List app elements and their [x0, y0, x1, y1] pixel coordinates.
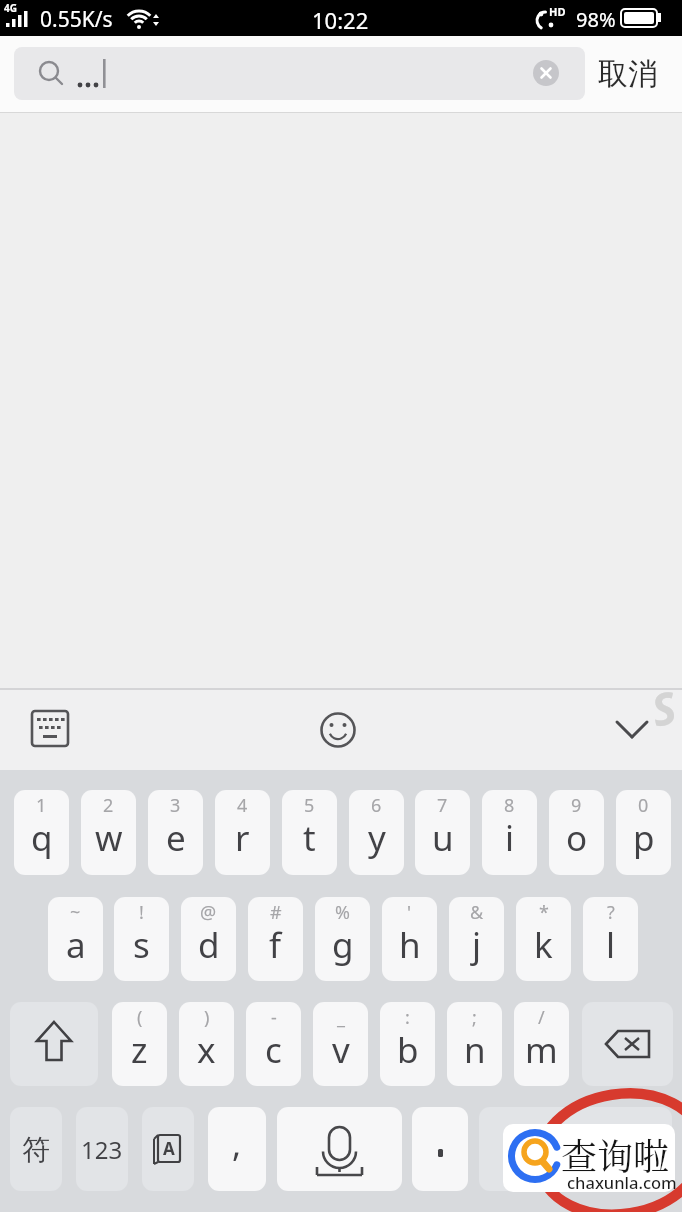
staticText: , — [232, 1121, 242, 1167]
staticText: @ — [200, 900, 217, 925]
staticText: s — [133, 921, 150, 969]
staticText: : — [405, 1005, 410, 1030]
staticText: 0 — [638, 793, 649, 818]
button[interactable] — [14, 47, 585, 100]
staticText: 搜索 — [546, 1130, 606, 1168]
button[interactable] — [304, 696, 372, 764]
button[interactable]: ( — [112, 1002, 167, 1086]
staticText: 2 — [103, 793, 114, 818]
staticText: t — [303, 814, 316, 862]
staticText: 4 — [237, 793, 248, 818]
staticText: % — [335, 900, 350, 925]
button[interactable]: / — [514, 1002, 569, 1086]
button[interactable]: ) — [179, 1002, 234, 1086]
staticText: 0.55K/s — [40, 5, 113, 34]
button[interactable]: A — [142, 1107, 194, 1191]
staticText: r — [235, 814, 250, 862]
button[interactable]: 6 — [349, 790, 404, 875]
staticText: 5 — [304, 793, 315, 818]
staticText: # — [270, 900, 282, 925]
staticText: 8 — [504, 793, 515, 818]
staticText: q — [31, 814, 53, 862]
button[interactable]: 符 — [10, 1107, 62, 1191]
staticText: 取消 — [598, 55, 658, 93]
button[interactable]: # — [248, 897, 303, 981]
button[interactable] — [277, 1107, 402, 1191]
staticText: 查询啦 — [561, 1129, 670, 1181]
staticText: m — [525, 1026, 558, 1074]
button[interactable]: 3 — [148, 790, 203, 875]
staticText: e — [166, 814, 186, 862]
staticText: 符 — [22, 1132, 50, 1167]
button[interactable]: 7 — [415, 790, 470, 875]
button[interactable] — [10, 1002, 98, 1086]
button[interactable]: @ — [181, 897, 236, 981]
staticText: * — [539, 900, 549, 925]
button[interactable]: - — [246, 1002, 301, 1086]
staticText: 98% — [576, 6, 616, 33]
staticText: k — [534, 921, 553, 969]
staticText: i — [505, 814, 515, 862]
button[interactable] — [582, 1002, 673, 1086]
button[interactable] — [16, 696, 84, 764]
button[interactable]: 1 — [14, 790, 69, 875]
staticText: p — [633, 814, 655, 862]
button[interactable]: 9 — [549, 790, 604, 875]
staticText: 7 — [437, 793, 448, 818]
staticText: n — [464, 1026, 486, 1074]
staticText: / — [538, 1005, 545, 1030]
staticText: f — [269, 921, 282, 969]
button[interactable]: 4 — [215, 790, 270, 875]
button[interactable]: , — [208, 1107, 266, 1191]
staticText: a — [66, 921, 86, 969]
button[interactable] — [598, 696, 666, 764]
button[interactable]: ~ — [48, 897, 103, 981]
button[interactable]: 搜索 — [479, 1107, 672, 1191]
button[interactable]: * — [516, 897, 571, 981]
staticText: z — [131, 1026, 148, 1074]
button[interactable]: 123 — [76, 1107, 128, 1191]
button[interactable]: 5 — [282, 790, 337, 875]
staticText: 4G — [4, 1, 17, 15]
staticText: S — [646, 676, 682, 740]
staticText: 9 — [571, 793, 582, 818]
staticText: 3 — [170, 793, 181, 818]
button[interactable]: 2 — [81, 790, 136, 875]
staticText: 10:22 — [312, 5, 369, 35]
staticText: x — [197, 1026, 216, 1074]
staticText: v — [332, 1026, 350, 1074]
staticText: h — [399, 921, 421, 969]
button[interactable]: ; — [447, 1002, 502, 1086]
button[interactable]: % — [315, 897, 370, 981]
staticText: w — [95, 814, 123, 862]
staticText: ) — [204, 1005, 210, 1030]
staticText: l — [606, 921, 616, 969]
staticText: u — [432, 814, 454, 862]
button[interactable]: : — [380, 1002, 435, 1086]
staticText: d — [198, 921, 220, 969]
staticText: o — [566, 814, 588, 862]
staticText: ' — [407, 900, 412, 925]
staticText: 1 — [36, 793, 47, 818]
staticText: ; — [472, 1005, 477, 1030]
staticText: - — [271, 1005, 277, 1030]
button[interactable] — [412, 1107, 468, 1191]
staticText: 123 — [81, 1133, 123, 1166]
staticText: ? — [607, 900, 615, 925]
button[interactable]: ' — [382, 897, 437, 981]
staticText: 6 — [371, 793, 382, 818]
button[interactable]: 取消 — [598, 55, 670, 99]
button[interactable]: _ — [313, 1002, 368, 1086]
button[interactable]: ! — [114, 897, 169, 981]
staticText: g — [332, 921, 354, 969]
staticText: j — [472, 921, 482, 969]
staticText: y — [368, 814, 386, 862]
button[interactable]: 8 — [482, 790, 537, 875]
staticText: ( — [137, 1005, 143, 1030]
button[interactable]: 0 — [616, 790, 671, 875]
button[interactable]: & — [449, 897, 504, 981]
staticText: A — [163, 1137, 175, 1160]
staticText: ~ — [70, 900, 81, 925]
staticText: ! — [139, 900, 144, 925]
button[interactable]: ? — [583, 897, 638, 981]
